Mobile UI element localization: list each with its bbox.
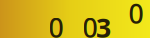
staticText: 0 [48, 10, 63, 38]
staticText: 3 [96, 10, 111, 38]
staticText: 0 [82, 10, 97, 38]
staticText: 0 [128, 0, 143, 31]
